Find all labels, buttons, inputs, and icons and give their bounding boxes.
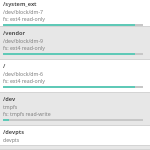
staticText: fs: ext4 read-only: [3, 15, 45, 22]
staticText: /dev/block/dm-6: [3, 70, 44, 77]
staticText: fs: ext4 read-only: [3, 44, 45, 51]
staticText: /dev: [3, 95, 16, 103]
button[interactable]: /vendor: [0, 27, 150, 60]
staticText: fs: devpts read-write: [3, 143, 53, 146]
button[interactable]: /devpts: [0, 126, 150, 146]
staticText: used: 1.39 MiB/2.72 GiB: [3, 123, 61, 126]
staticText: /vendor: [3, 29, 26, 37]
staticText: /system_ext: [3, 0, 37, 8]
staticText: /devpts: [3, 128, 25, 136]
staticText: used: 815.44 MiB/817.94 MiB: [3, 90, 74, 93]
staticText: tmpfs: [3, 103, 18, 110]
staticText: /dev/block/dm-9: [3, 37, 44, 44]
staticText: /dev/block/dm-7: [3, 8, 44, 15]
staticText: devpts: [3, 136, 20, 143]
staticText: used: 479.44 MiB/480.92 MiB: [3, 57, 74, 60]
button[interactable]: /dev/binderfs: [0, 146, 150, 150]
button[interactable]: /dev: [0, 93, 150, 126]
button[interactable]: /: [0, 60, 150, 93]
button[interactable]: /system_ext: [0, 0, 150, 27]
staticText: fs: tmpfs read-write: [3, 110, 51, 117]
staticText: /: [3, 62, 6, 70]
staticText: /dev/binderfs: [3, 148, 41, 150]
staticText: fs: ext4 read-only: [3, 77, 45, 84]
